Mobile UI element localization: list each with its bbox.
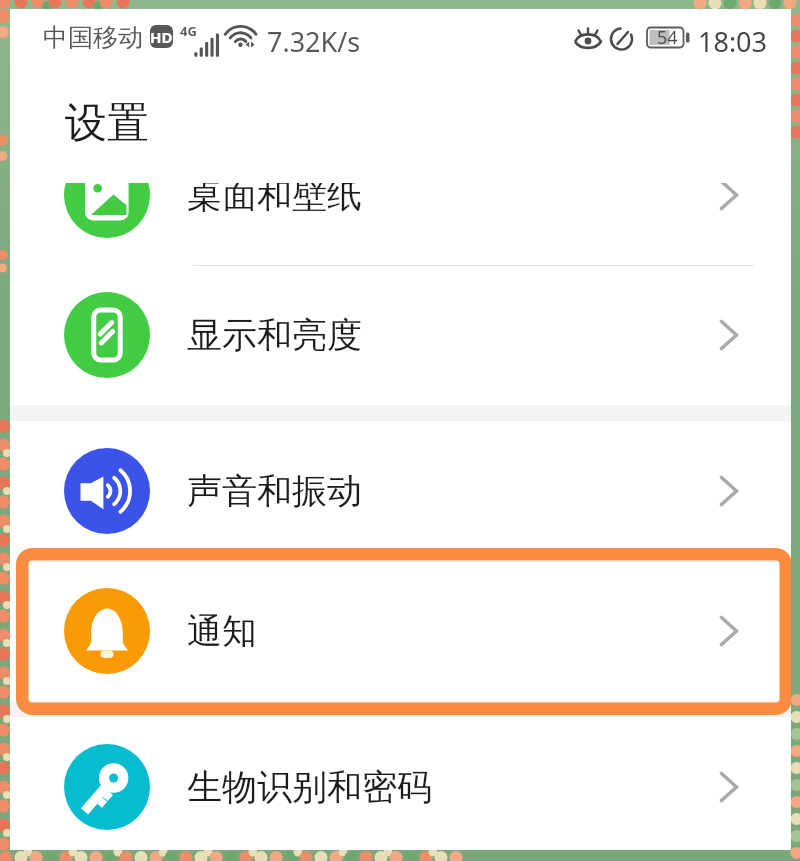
staticText: 设置 xyxy=(65,97,149,150)
other: Open xyxy=(714,772,744,802)
staticText: 18:03 xyxy=(698,23,768,60)
button[interactable]: 通知 xyxy=(10,561,791,701)
button[interactable]: 显示和亮度 xyxy=(10,265,791,405)
staticText: 中国移动 xyxy=(43,22,143,53)
button[interactable]: 声音和振动 xyxy=(10,421,791,561)
staticText: 桌面和壁纸 xyxy=(187,183,362,217)
staticText: 声音和振动 xyxy=(187,469,362,513)
staticText: 7.32K/s xyxy=(267,23,361,60)
button[interactable]: 生物识别和密码 xyxy=(10,717,791,850)
staticText: 4G xyxy=(180,22,197,40)
staticText: HD xyxy=(150,27,173,47)
other: Open xyxy=(714,320,744,350)
staticText: 54 xyxy=(657,25,678,50)
other: Open xyxy=(714,616,744,646)
button[interactable]: 桌面和壁纸 xyxy=(10,183,791,265)
staticText: 生物识别和密码 xyxy=(187,765,432,809)
staticText: 显示和亮度 xyxy=(187,313,362,357)
other: Open xyxy=(714,183,744,210)
other: Open xyxy=(714,476,744,506)
staticText: 通知 xyxy=(187,609,257,653)
